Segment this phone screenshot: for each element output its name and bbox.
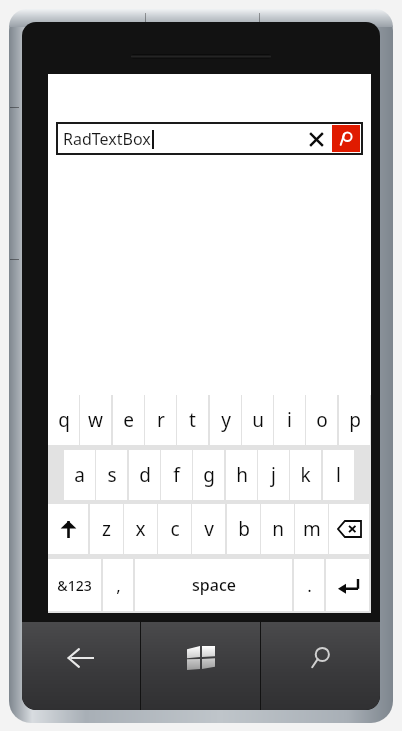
staticText: x xyxy=(135,516,146,542)
button[interactable]: RadTextBox xyxy=(56,122,363,155)
staticText: r xyxy=(157,407,165,433)
button[interactable]: a xyxy=(64,450,95,500)
staticText: n xyxy=(272,516,284,542)
button[interactable]: o xyxy=(306,395,337,445)
staticText: d xyxy=(139,462,151,488)
button[interactable]: u xyxy=(242,395,273,445)
staticText: u xyxy=(252,407,264,433)
staticText: a xyxy=(74,462,85,488)
button[interactable]: Start xyxy=(141,622,260,710)
button[interactable]: k xyxy=(290,450,321,500)
staticText: y xyxy=(221,407,231,433)
button[interactable]: g xyxy=(193,450,224,500)
staticText: RadTextBox xyxy=(63,128,151,150)
button[interactable]: r xyxy=(145,395,176,445)
staticText: v xyxy=(204,516,214,542)
staticText: z xyxy=(102,516,111,542)
staticText: s xyxy=(107,462,117,488)
button[interactable]: v xyxy=(192,504,225,554)
staticText: space xyxy=(192,574,236,596)
staticText: l xyxy=(336,462,341,488)
staticText: i xyxy=(287,407,292,433)
button[interactable]: Backspace xyxy=(329,504,369,554)
button[interactable]: s xyxy=(96,450,127,500)
button[interactable]: t xyxy=(177,395,208,445)
button[interactable]: Search xyxy=(261,622,380,710)
staticText: p xyxy=(349,407,361,433)
button[interactable]: c xyxy=(158,504,191,554)
button[interactable]: Back xyxy=(22,622,140,710)
staticText: . xyxy=(307,574,312,597)
button[interactable]: l xyxy=(323,450,354,500)
button[interactable]: &123 xyxy=(48,559,101,611)
staticText: c xyxy=(170,516,180,542)
button[interactable]: Search xyxy=(332,125,360,152)
button[interactable]: d xyxy=(129,450,160,500)
staticText: b xyxy=(238,516,250,542)
button[interactable]: z xyxy=(90,504,123,554)
staticText: j xyxy=(271,462,276,488)
staticText: , xyxy=(116,574,121,597)
button[interactable]: h xyxy=(226,450,257,500)
staticText: t xyxy=(189,407,196,433)
button[interactable]: p xyxy=(339,395,370,445)
button[interactable]: Enter xyxy=(326,559,369,611)
staticText: o xyxy=(316,407,328,433)
staticText: &123 xyxy=(57,576,92,595)
button[interactable]: f xyxy=(161,450,192,500)
button[interactable]: n xyxy=(261,504,294,554)
button[interactable]: . xyxy=(294,559,324,611)
staticText: e xyxy=(123,407,134,433)
button[interactable]: , xyxy=(103,559,133,611)
staticText: w xyxy=(88,407,103,433)
staticText: k xyxy=(300,462,311,488)
button[interactable]: e xyxy=(113,395,144,445)
staticText: q xyxy=(58,407,70,433)
button[interactable]: Shift xyxy=(48,504,88,554)
button[interactable]: y xyxy=(210,395,241,445)
button[interactable]: w xyxy=(80,395,111,445)
button[interactable]: b xyxy=(227,504,260,554)
staticText: f xyxy=(173,462,180,488)
button[interactable]: Clear text xyxy=(303,126,329,152)
staticText: h xyxy=(236,462,248,488)
button[interactable]: i xyxy=(274,395,305,445)
button[interactable]: x xyxy=(124,504,157,554)
button[interactable]: q xyxy=(48,395,79,445)
button[interactable]: space xyxy=(135,559,292,611)
button[interactable]: m xyxy=(295,504,328,554)
staticText: g xyxy=(203,462,215,488)
button[interactable]: j xyxy=(258,450,289,500)
staticText: m xyxy=(303,516,321,542)
